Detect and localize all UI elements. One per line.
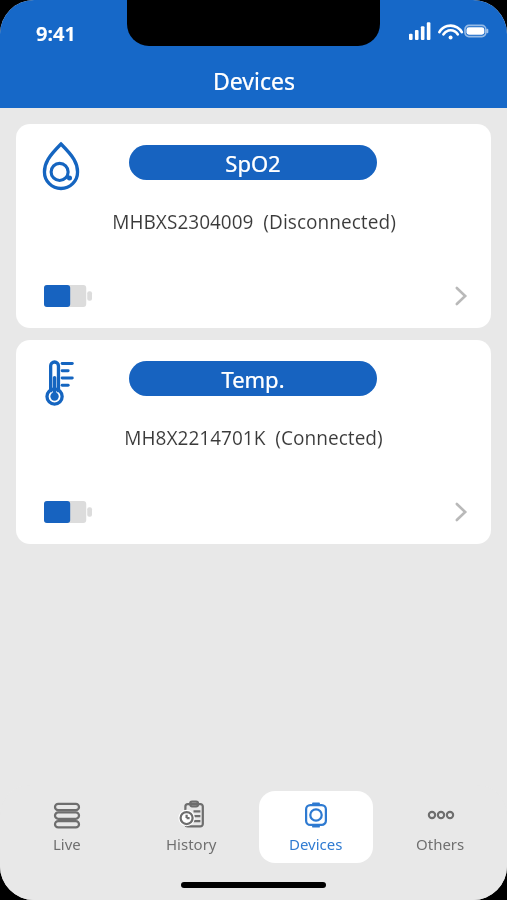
button[interactable]: History xyxy=(134,791,248,863)
staticText: Others xyxy=(416,834,465,854)
button[interactable]: Temp. xyxy=(129,361,377,396)
button[interactable]: Live xyxy=(10,791,124,863)
staticText: History xyxy=(166,834,217,854)
staticText: Devices xyxy=(289,834,343,854)
staticText: MH8X2214701K (Connected) xyxy=(124,425,383,451)
staticText: SpO2 xyxy=(225,148,281,178)
staticText: Devices xyxy=(213,65,295,96)
staticText: Live xyxy=(53,834,81,854)
button[interactable]: Others xyxy=(383,791,497,863)
other: Open device details xyxy=(455,502,467,522)
button[interactable]: Temp. xyxy=(16,340,491,544)
button[interactable]: Devices xyxy=(259,791,373,863)
button[interactable]: SpO2 xyxy=(129,145,377,180)
staticText: Temp. xyxy=(221,364,285,394)
button[interactable]: SpO2 xyxy=(16,124,491,328)
other: Open device details xyxy=(455,286,467,306)
staticText: 9:41 xyxy=(36,20,76,47)
staticText: MHBXS2304009 (Disconnected) xyxy=(112,209,396,235)
